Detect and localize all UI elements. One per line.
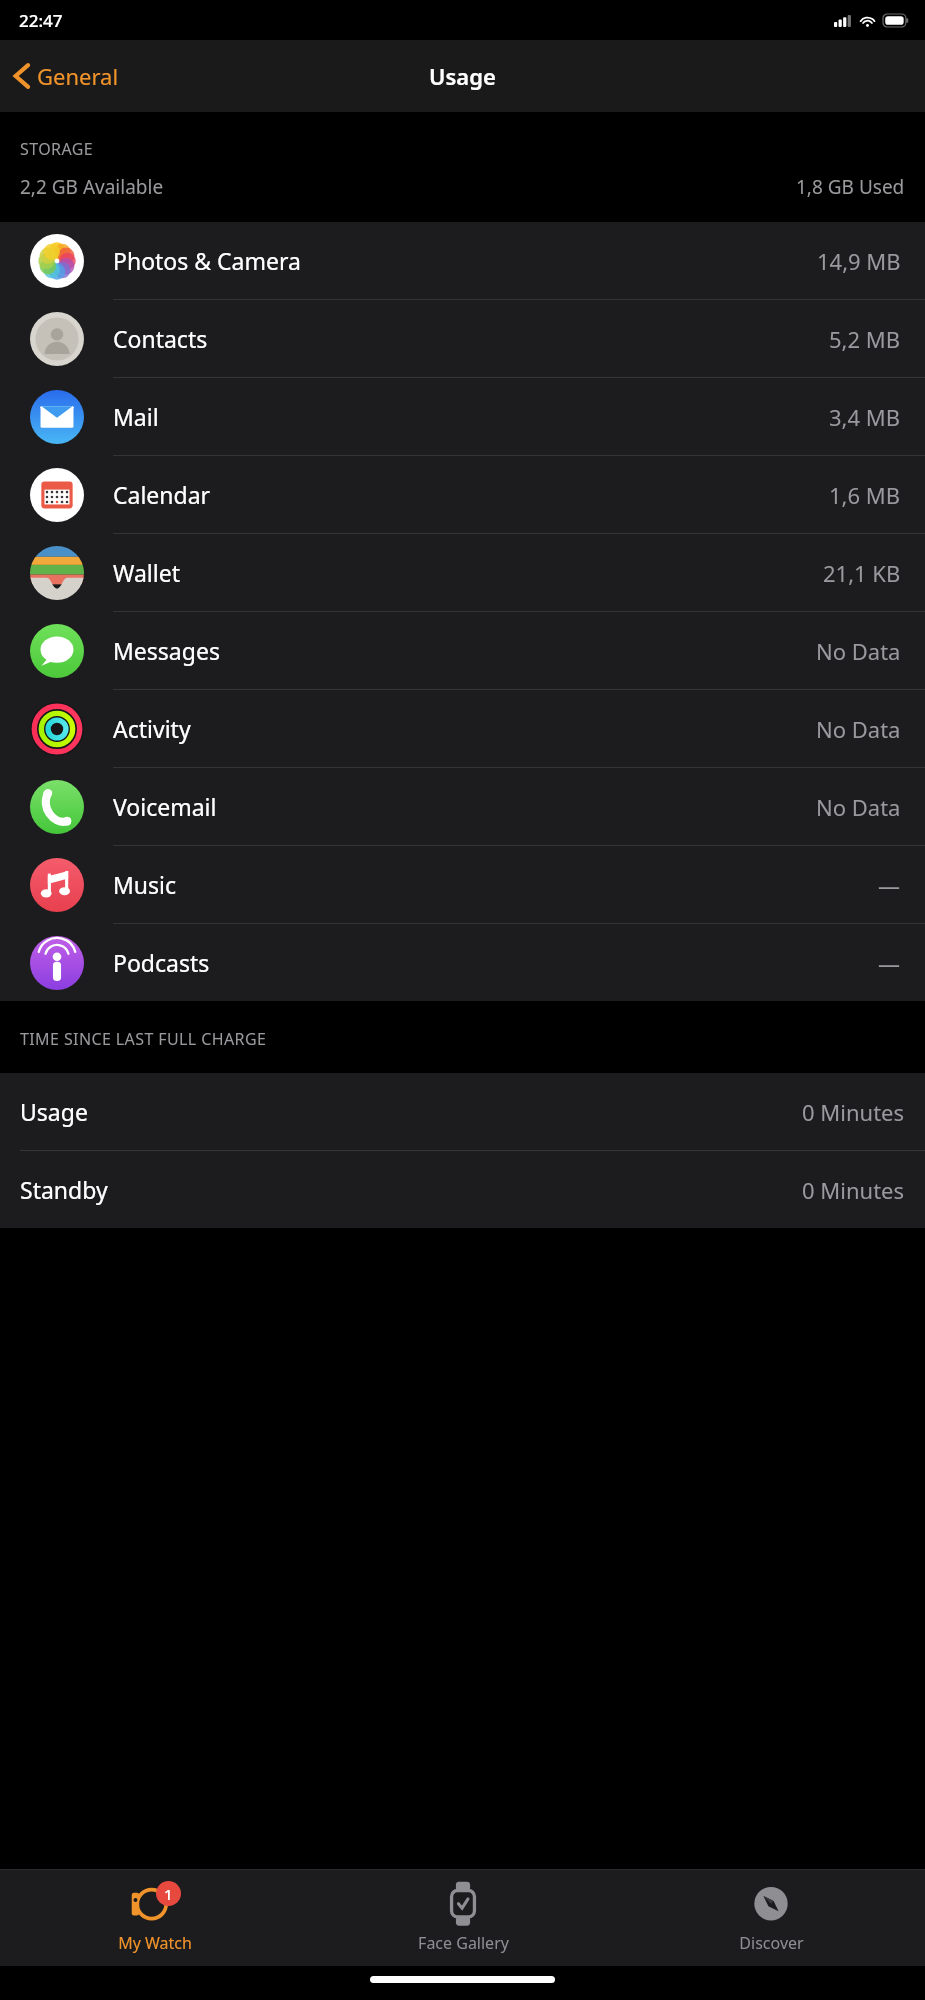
staticText: No Data — [816, 792, 901, 822]
staticText: 5,2 MB — [829, 324, 901, 354]
button[interactable]: Podcasts — [0, 924, 925, 1001]
button[interactable]: Face Gallery — [309, 1870, 617, 1966]
staticText: 1,8 GB Used — [796, 174, 905, 200]
button[interactable]: Usage — [0, 1073, 925, 1150]
button[interactable]: Photos & Camera — [0, 222, 925, 299]
button[interactable]: Mail — [0, 378, 925, 455]
button[interactable]: Discover — [617, 1870, 925, 1966]
staticText: Standby — [20, 1174, 108, 1205]
staticText: Wallet — [113, 557, 180, 588]
staticText: 1,6 MB — [829, 480, 901, 510]
staticText: TIME SINCE LAST FULL CHARGE — [20, 1028, 267, 1050]
button[interactable]: Messages — [0, 612, 925, 689]
button[interactable]: My Watch — [0, 1870, 309, 1966]
staticText: 2,2 GB Available — [20, 174, 164, 200]
other: Discover — [743, 1883, 799, 1927]
staticText: — — [878, 870, 901, 900]
staticText: Contacts — [113, 323, 208, 354]
staticText: No Data — [816, 714, 901, 744]
staticText: Music — [113, 869, 177, 900]
button[interactable]: Activity — [0, 690, 925, 767]
button[interactable]: Contacts — [0, 300, 925, 377]
staticText: Face Gallery — [418, 1932, 509, 1954]
other: Face Gallery — [435, 1883, 491, 1927]
staticText: No Data — [816, 636, 901, 666]
button[interactable]: Music — [0, 846, 925, 923]
staticText: 1 — [164, 1884, 173, 1904]
staticText: Activity — [113, 713, 191, 744]
staticText: Photos & Camera — [113, 245, 301, 276]
staticText: Usage — [20, 1096, 88, 1127]
staticText: — — [878, 948, 901, 978]
button[interactable]: Calendar — [0, 456, 925, 533]
staticText: 0 Minutes — [802, 1175, 905, 1205]
staticText: 3,4 MB — [829, 402, 901, 432]
staticText: Messages — [113, 635, 220, 666]
staticText: Voicemail — [113, 791, 217, 822]
staticText: 0 Minutes — [802, 1097, 905, 1127]
button[interactable]: Wallet — [0, 534, 925, 611]
staticText: Discover — [739, 1932, 804, 1954]
staticText: General — [37, 61, 119, 91]
staticText: 14,9 MB — [817, 246, 901, 276]
staticText: 22:47 — [19, 9, 63, 32]
staticText: My Watch — [118, 1932, 192, 1954]
staticText: Usage — [429, 61, 496, 91]
staticText: STORAGE — [20, 138, 94, 160]
staticText: 21,1 KB — [823, 558, 901, 588]
button[interactable]: Standby — [0, 1151, 925, 1228]
staticText: Calendar — [113, 479, 211, 510]
button[interactable]: Voicemail — [0, 768, 925, 845]
button[interactable]: General — [0, 53, 131, 99]
other: My Watch — [127, 1883, 183, 1927]
staticText: Mail — [113, 401, 159, 432]
staticText: Podcasts — [113, 947, 210, 978]
